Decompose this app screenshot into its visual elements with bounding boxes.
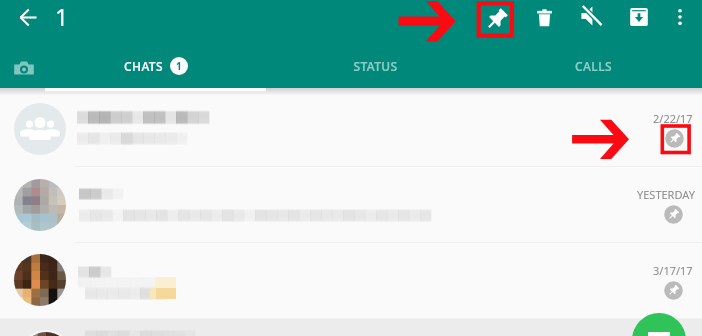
staticText: 2/22/17 bbox=[653, 111, 693, 126]
button[interactable]: Delete bbox=[525, 0, 563, 36]
button[interactable]: Pin bbox=[477, 0, 515, 38]
staticText: 3/17/17 bbox=[653, 263, 693, 278]
button[interactable]: More options bbox=[661, 0, 699, 36]
staticText: 1 bbox=[55, 1, 69, 32]
button[interactable]: CALLS bbox=[503, 44, 683, 88]
staticText: CHATS bbox=[124, 58, 163, 74]
button[interactable]: Pinned bbox=[664, 205, 683, 224]
button[interactable]: Camera bbox=[6, 50, 42, 86]
staticText: CALLS bbox=[575, 58, 612, 74]
staticText: YESTERDAY bbox=[637, 187, 695, 202]
button[interactable]: Pinned bbox=[664, 281, 683, 300]
button[interactable]: Mute bbox=[572, 0, 610, 35]
staticText: 1 bbox=[176, 59, 182, 73]
staticText: STATUS bbox=[353, 58, 398, 74]
button[interactable]: New chat bbox=[632, 313, 686, 336]
button[interactable]: Back bbox=[8, 2, 40, 34]
button[interactable]: Archive bbox=[620, 0, 658, 35]
button[interactable]: STATUS bbox=[285, 44, 465, 88]
button[interactable]: Pinned bbox=[665, 129, 684, 148]
button[interactable]: CHATS bbox=[45, 44, 266, 88]
